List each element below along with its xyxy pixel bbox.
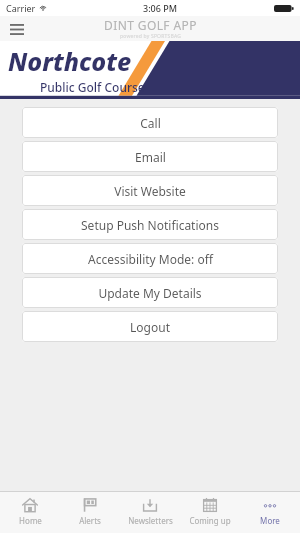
button[interactable]: Call (22, 107, 278, 138)
button[interactable]: Menu (5, 17, 29, 41)
button[interactable]: Newsletters (120, 492, 180, 533)
button[interactable]: Email (22, 141, 278, 172)
staticText: powered by SPORTSBAG (120, 33, 182, 40)
staticText: Setup Push Notifications (81, 217, 219, 233)
staticText: Newsletters (128, 515, 173, 526)
button[interactable]: Home (0, 492, 60, 533)
staticText: Northcote (8, 44, 132, 78)
staticText: Alerts (79, 515, 101, 526)
button[interactable]: More (240, 492, 300, 533)
button[interactable]: Update My Details (22, 277, 278, 308)
staticText: Home (19, 515, 42, 526)
button[interactable]: Logout (22, 311, 278, 342)
button[interactable]: Visit Website (22, 175, 278, 206)
staticText: Email (135, 149, 166, 165)
staticText: DINT GOLF APP (104, 17, 197, 33)
button[interactable]: Accessibility Mode: off (22, 243, 278, 274)
staticText: Visit Website (114, 183, 186, 199)
staticText: Update My Details (98, 285, 202, 301)
staticText: Public Golf Course (40, 79, 145, 95)
button[interactable]: Setup Push Notifications (22, 209, 278, 240)
staticText: Call (140, 115, 161, 131)
staticText: 3:06 PM (143, 2, 177, 14)
staticText: Accessibility Mode: off (88, 251, 213, 267)
staticText: More (260, 515, 280, 526)
staticText: Logout (130, 319, 170, 335)
staticText: Coming up (189, 515, 231, 526)
staticText: Carrier (6, 2, 36, 14)
button[interactable]: Coming up (180, 492, 240, 533)
button[interactable]: Alerts (60, 492, 120, 533)
